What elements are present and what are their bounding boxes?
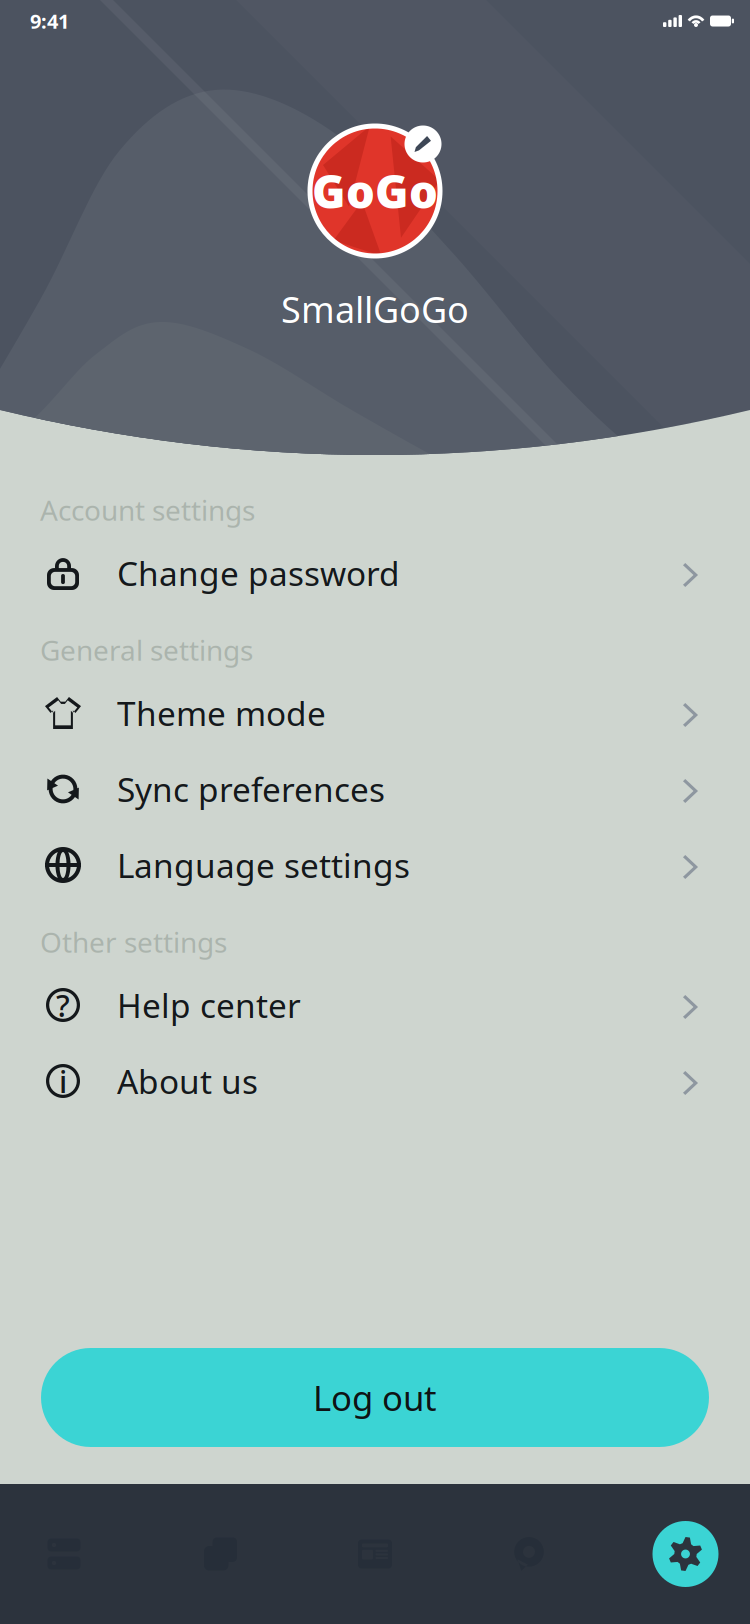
staticText: Other settings (40, 923, 227, 961)
button[interactable]: i (0, 1043, 750, 1119)
staticText: Language settings (117, 843, 410, 887)
staticText: GoGo (312, 161, 438, 221)
staticText: About us (117, 1059, 258, 1103)
button[interactable]: Change password (0, 535, 750, 611)
staticText: Theme mode (117, 691, 326, 735)
staticText: 9:41 (30, 8, 69, 34)
button[interactable]: Log out (41, 1348, 709, 1447)
staticText: Log out (313, 1374, 437, 1420)
button[interactable]: Sync preferences (0, 751, 750, 827)
button[interactable]: Settings (621, 1484, 750, 1624)
button[interactable]: Theme mode (0, 675, 750, 751)
staticText: i (59, 1061, 67, 1101)
staticText: ? (56, 985, 70, 1025)
button[interactable]: ? (0, 967, 750, 1043)
staticText: General settings (40, 631, 253, 669)
staticText: Sync preferences (117, 767, 385, 811)
staticText: Help center (117, 983, 301, 1027)
staticText: Change password (117, 551, 400, 595)
button[interactable]: Language settings (0, 827, 750, 903)
staticText: Account settings (40, 491, 255, 529)
staticText: SmallGoGo (281, 285, 469, 333)
